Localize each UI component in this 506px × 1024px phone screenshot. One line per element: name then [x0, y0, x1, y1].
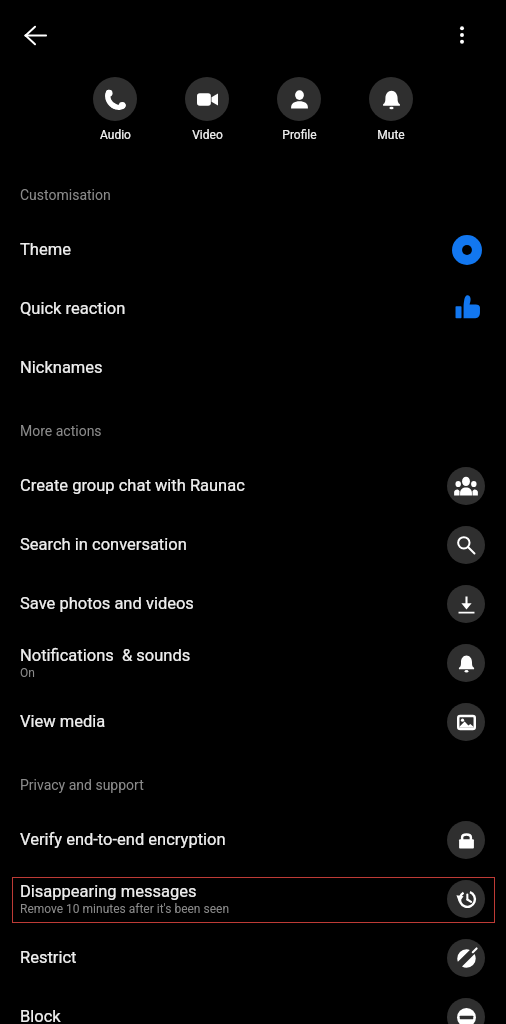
- button[interactable]: Search in conversation: [0, 515, 506, 574]
- staticText: Save photos and videos: [20, 594, 194, 613]
- staticText: Video: [192, 128, 223, 142]
- button[interactable]: Back: [11, 11, 59, 59]
- button[interactable]: Profile: [253, 77, 345, 142]
- button[interactable]: Block: [0, 987, 506, 1024]
- other: Create group chat: [447, 467, 485, 505]
- other: Restrict: [447, 939, 485, 977]
- staticText: On: [20, 666, 35, 680]
- button[interactable]: Audio: [69, 77, 161, 142]
- staticText: Theme: [20, 240, 71, 259]
- button[interactable]: View media: [0, 692, 506, 751]
- staticText: Profile: [282, 128, 317, 142]
- staticText: Quick reaction: [20, 299, 126, 318]
- staticText: Notifications & sounds: [20, 646, 191, 665]
- staticText: Mute: [377, 128, 405, 142]
- button[interactable]: Notifications & sounds: [0, 633, 506, 692]
- staticText: Verify end-to-end encryption: [20, 830, 226, 849]
- button[interactable]: Create group chat with Raunac: [0, 456, 506, 515]
- other: Search: [447, 526, 485, 564]
- button[interactable]: Nicknames: [0, 338, 506, 397]
- other: Notifications: [447, 644, 485, 682]
- staticText: Nicknames: [20, 358, 103, 377]
- button[interactable]: Verify end-to-end encryption: [0, 810, 506, 869]
- other: View media: [447, 703, 485, 741]
- staticText: Create group chat with Raunac: [20, 476, 245, 495]
- staticText: Remove 10 minutes after it's been seen: [20, 902, 230, 916]
- other: Block: [447, 998, 485, 1024]
- staticText: Restrict: [20, 948, 77, 967]
- staticText: More actions: [20, 423, 102, 439]
- button[interactable]: More options: [438, 11, 486, 59]
- staticText: Disappearing messages: [20, 882, 197, 901]
- other: Encryption: [447, 821, 485, 859]
- button[interactable]: Mute: [345, 77, 437, 142]
- staticText: Block: [20, 1007, 61, 1024]
- other: Disappearing messages: [447, 880, 485, 918]
- button[interactable]: Video: [161, 77, 253, 142]
- staticText: Search in conversation: [20, 535, 187, 554]
- button[interactable]: Disappearing messages: [0, 869, 506, 928]
- button[interactable]: Save photos and videos: [0, 574, 506, 633]
- button[interactable]: Restrict: [0, 928, 506, 987]
- staticText: Audio: [100, 128, 131, 142]
- staticText: View media: [20, 712, 106, 731]
- button[interactable]: Theme: [0, 220, 506, 279]
- button[interactable]: Quick reaction: [0, 279, 506, 338]
- staticText: Customisation: [20, 187, 111, 203]
- other: Save: [447, 585, 485, 623]
- staticText: Privacy and support: [20, 777, 144, 793]
